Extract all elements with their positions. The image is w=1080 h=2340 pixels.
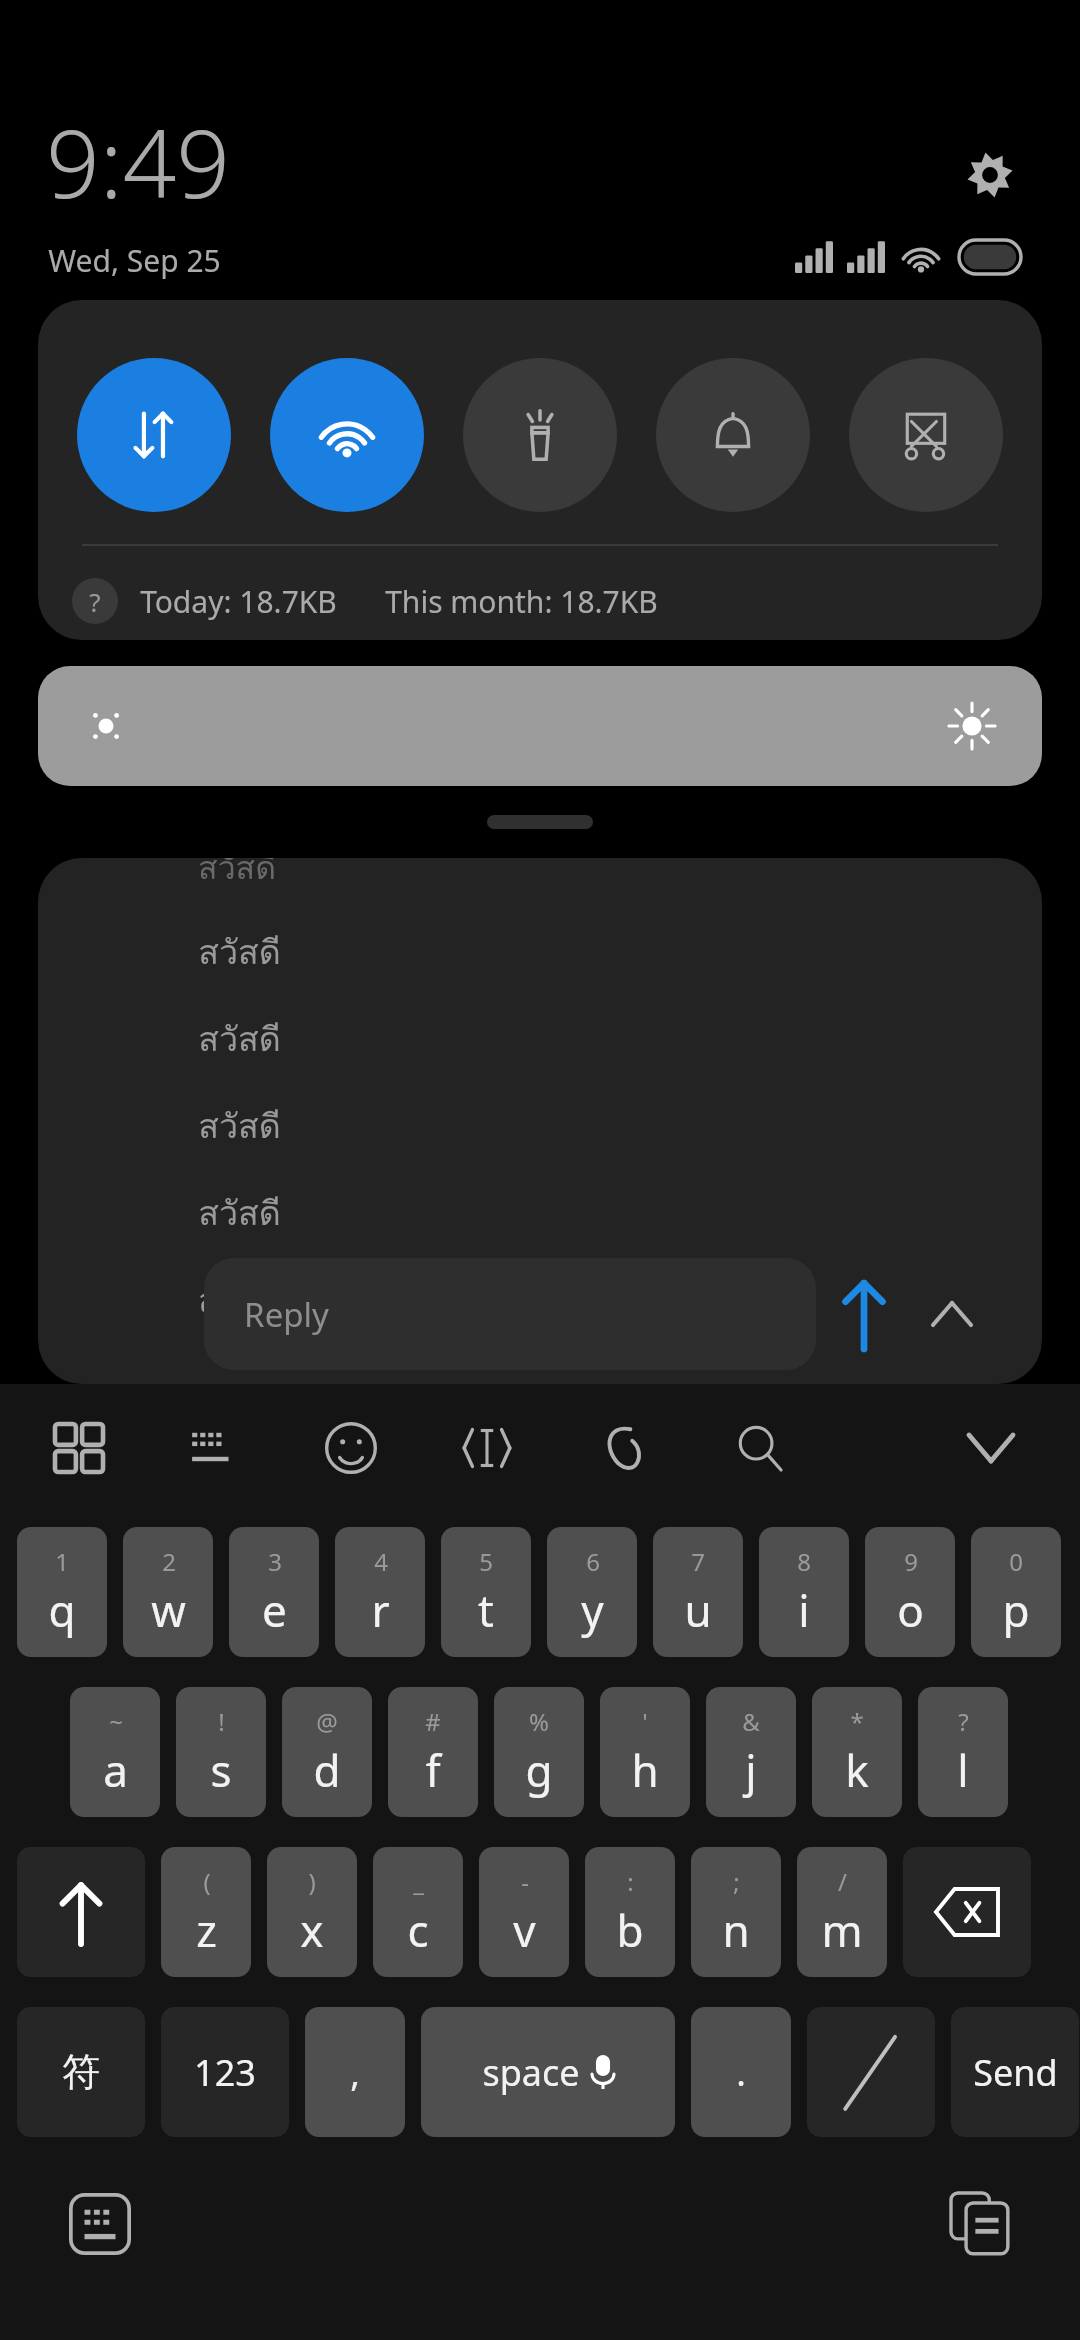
button[interactable]: Send bbox=[951, 2007, 1079, 2137]
button[interactable]: 7 bbox=[653, 1527, 743, 1657]
staticText: & bbox=[742, 1705, 760, 1738]
button[interactable]: Emoji bbox=[312, 1409, 390, 1487]
button[interactable]: 0 bbox=[971, 1527, 1061, 1657]
button[interactable]: _ bbox=[373, 1847, 463, 1977]
button[interactable]: % bbox=[494, 1687, 584, 1817]
button[interactable]: Cursor bbox=[448, 1409, 526, 1487]
staticText: 符 bbox=[62, 2048, 100, 2096]
staticText: , bbox=[350, 2048, 360, 2097]
button[interactable]: Hide keyboard bbox=[952, 1409, 1030, 1487]
button[interactable]: Quick setting bbox=[656, 358, 810, 512]
staticText: c bbox=[407, 1900, 429, 1960]
staticText: % bbox=[529, 1705, 549, 1738]
button[interactable]: Apps bbox=[40, 1409, 118, 1487]
staticText: สวัสดี bbox=[198, 1012, 281, 1066]
button[interactable] bbox=[38, 666, 1042, 786]
staticText: Send bbox=[973, 2048, 1058, 2097]
staticText: 3 bbox=[268, 1545, 282, 1578]
staticText: v bbox=[513, 1900, 536, 1960]
staticText: @ bbox=[316, 1705, 338, 1738]
staticText: w bbox=[151, 1580, 186, 1640]
staticText: j bbox=[745, 1740, 757, 1800]
button[interactable]: ' bbox=[600, 1687, 690, 1817]
staticText: t bbox=[478, 1580, 494, 1640]
staticText: f bbox=[425, 1740, 441, 1800]
staticText: สวัสดี bbox=[198, 1273, 281, 1327]
staticText: b bbox=[616, 1900, 644, 1960]
button[interactable]: . bbox=[691, 2007, 791, 2137]
staticText: 5 bbox=[479, 1545, 493, 1578]
button[interactable]: Clipboard bbox=[942, 2186, 1018, 2262]
button[interactable]: 3 bbox=[229, 1527, 319, 1657]
button[interactable]: Collapse bbox=[912, 1274, 992, 1354]
button[interactable]: * bbox=[812, 1687, 902, 1817]
button[interactable]: @ bbox=[282, 1687, 372, 1817]
button[interactable]: space bbox=[421, 2007, 675, 2137]
staticText: : bbox=[627, 1865, 634, 1898]
button[interactable]: Send reply bbox=[816, 1266, 912, 1362]
staticText: - bbox=[521, 1865, 529, 1898]
staticText: r bbox=[371, 1580, 390, 1640]
button[interactable]: ) bbox=[267, 1847, 357, 1977]
button[interactable]: Reply bbox=[204, 1258, 816, 1370]
button[interactable]: / bbox=[797, 1847, 887, 1977]
button[interactable]: Settings bbox=[955, 140, 1025, 210]
staticText: 1 bbox=[55, 1545, 69, 1578]
button[interactable]: Search bbox=[720, 1409, 798, 1487]
button[interactable]: Quick setting bbox=[849, 358, 1003, 512]
button[interactable]: 8 bbox=[759, 1527, 849, 1657]
staticText: 7 bbox=[691, 1545, 705, 1578]
staticText: p bbox=[1002, 1580, 1030, 1640]
button[interactable]: 6 bbox=[547, 1527, 637, 1657]
button[interactable]: ? bbox=[918, 1687, 1008, 1817]
button[interactable]: ! bbox=[176, 1687, 266, 1817]
staticText: Reply bbox=[244, 1292, 329, 1337]
staticText: ; bbox=[733, 1865, 740, 1898]
button[interactable]: Keyboard bbox=[176, 1409, 254, 1487]
button[interactable]: Quick setting bbox=[270, 358, 424, 512]
staticText: d bbox=[313, 1740, 341, 1800]
button[interactable]: Quick setting bbox=[77, 358, 231, 512]
staticText: สวัสดี bbox=[198, 925, 281, 979]
button[interactable]: Language bbox=[807, 2007, 935, 2137]
staticText: h bbox=[631, 1740, 659, 1800]
staticText: u bbox=[684, 1580, 712, 1640]
button[interactable]: 符 bbox=[17, 2007, 145, 2137]
staticText: 0 bbox=[1009, 1545, 1023, 1578]
staticText: e bbox=[262, 1580, 287, 1640]
staticText: x bbox=[300, 1900, 324, 1960]
staticText: * bbox=[850, 1705, 864, 1738]
staticText: สวัสดี bbox=[198, 1186, 281, 1240]
staticText: # bbox=[425, 1705, 441, 1738]
button[interactable]: 2 bbox=[123, 1527, 213, 1657]
button[interactable]: 123 bbox=[161, 2007, 289, 2137]
button[interactable]: 9 bbox=[865, 1527, 955, 1657]
button[interactable]: Data info bbox=[72, 578, 118, 624]
button[interactable]: : bbox=[585, 1847, 675, 1977]
staticText: 6 bbox=[586, 1545, 600, 1578]
button[interactable]: Quick setting bbox=[463, 358, 617, 512]
staticText: l bbox=[957, 1740, 969, 1800]
staticText: 9:49 bbox=[46, 98, 230, 226]
button[interactable]: 1 bbox=[17, 1527, 107, 1657]
button[interactable]: 5 bbox=[441, 1527, 531, 1657]
staticText: 4 bbox=[374, 1545, 388, 1578]
staticText: สวัสดี bbox=[198, 1099, 281, 1153]
button[interactable]: , bbox=[305, 2007, 405, 2137]
button[interactable]: Switch keyboard bbox=[62, 2186, 138, 2262]
staticText: o bbox=[897, 1580, 924, 1640]
button[interactable]: ( bbox=[161, 1847, 251, 1977]
button[interactable]: Shift bbox=[17, 1847, 145, 1977]
staticText: 8 bbox=[797, 1545, 811, 1578]
button[interactable]: - bbox=[479, 1847, 569, 1977]
staticText: ' bbox=[642, 1705, 648, 1738]
button[interactable]: ; bbox=[691, 1847, 781, 1977]
staticText: _ bbox=[413, 1865, 424, 1898]
button[interactable]: & bbox=[706, 1687, 796, 1817]
button[interactable]: Expand bbox=[487, 815, 593, 829]
button[interactable]: # bbox=[388, 1687, 478, 1817]
button[interactable]: 4 bbox=[335, 1527, 425, 1657]
button[interactable]: Attach bbox=[584, 1409, 662, 1487]
button[interactable]: Backspace bbox=[903, 1847, 1031, 1977]
button[interactable]: ~ bbox=[70, 1687, 160, 1817]
